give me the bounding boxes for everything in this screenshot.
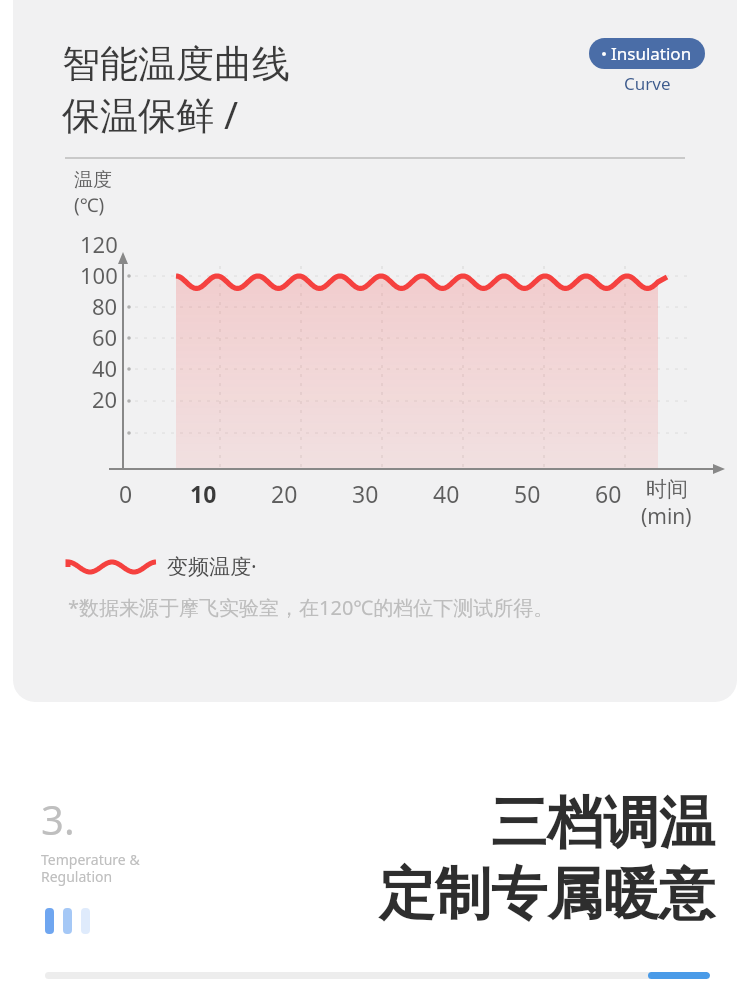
staticText: 40 — [433, 478, 460, 509]
button[interactable]: 智能温度曲线 — [13, 0, 737, 702]
staticText: Temperature & Regulation — [41, 850, 140, 886]
staticText: 温度 — [74, 168, 112, 192]
staticText: 三档调温 — [491, 788, 715, 859]
staticText: (min) — [641, 502, 692, 531]
staticText: 3. — [41, 792, 75, 846]
button[interactable]: Insulation — [589, 38, 705, 69]
staticText: (℃) — [74, 192, 105, 218]
staticText: 60 — [92, 322, 118, 352]
staticText: Curve — [624, 72, 671, 95]
other: Page progress — [45, 972, 710, 979]
staticText: 定制专属暖意 — [379, 859, 715, 930]
staticText: 80 — [92, 291, 118, 321]
staticText: 30 — [352, 478, 379, 509]
staticText: 10 — [190, 478, 217, 509]
staticText: 50 — [514, 478, 541, 509]
staticText: 100 — [80, 260, 118, 290]
staticText: 120 — [80, 229, 118, 259]
staticText: 0 — [119, 478, 133, 509]
staticText: 20 — [271, 478, 298, 509]
staticText: 变频温度· — [167, 552, 257, 581]
staticText: 保温保鲜 / — [62, 88, 239, 140]
staticText: 时间 — [646, 476, 688, 502]
staticText: *数据来源于摩飞实验室，在120℃的档位下测试所得。 — [68, 594, 554, 621]
staticText: 40 — [92, 353, 118, 383]
staticText: 60 — [595, 478, 622, 509]
staticText: 20 — [92, 384, 118, 414]
staticText: Insulation — [611, 42, 692, 65]
staticText: 智能温度曲线 — [62, 40, 290, 88]
